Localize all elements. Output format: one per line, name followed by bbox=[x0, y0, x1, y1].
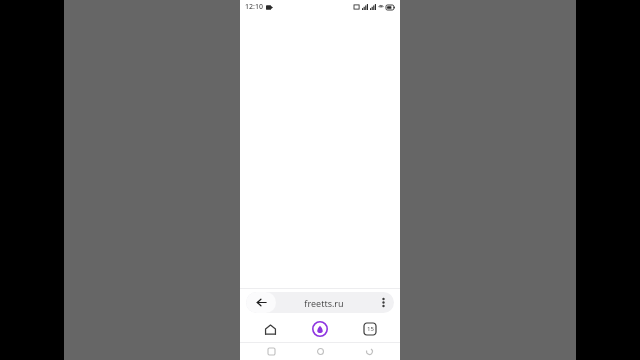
staticText: 15 bbox=[367, 325, 374, 333]
button[interactable]: Back bbox=[246, 292, 276, 313]
staticText: freetts.ru bbox=[304, 297, 344, 309]
button[interactable]: Tabs, 15 open bbox=[350, 316, 390, 342]
button[interactable]: Alice assistant bbox=[300, 316, 340, 342]
button[interactable]: Home bbox=[250, 316, 290, 342]
button[interactable]: Back bbox=[351, 343, 387, 360]
button[interactable]: Back bbox=[246, 292, 394, 313]
button[interactable]: More options bbox=[372, 292, 394, 313]
button[interactable]: Home bbox=[302, 343, 338, 360]
button[interactable]: Recent apps bbox=[253, 343, 289, 360]
staticText: 12:10 bbox=[245, 2, 263, 12]
